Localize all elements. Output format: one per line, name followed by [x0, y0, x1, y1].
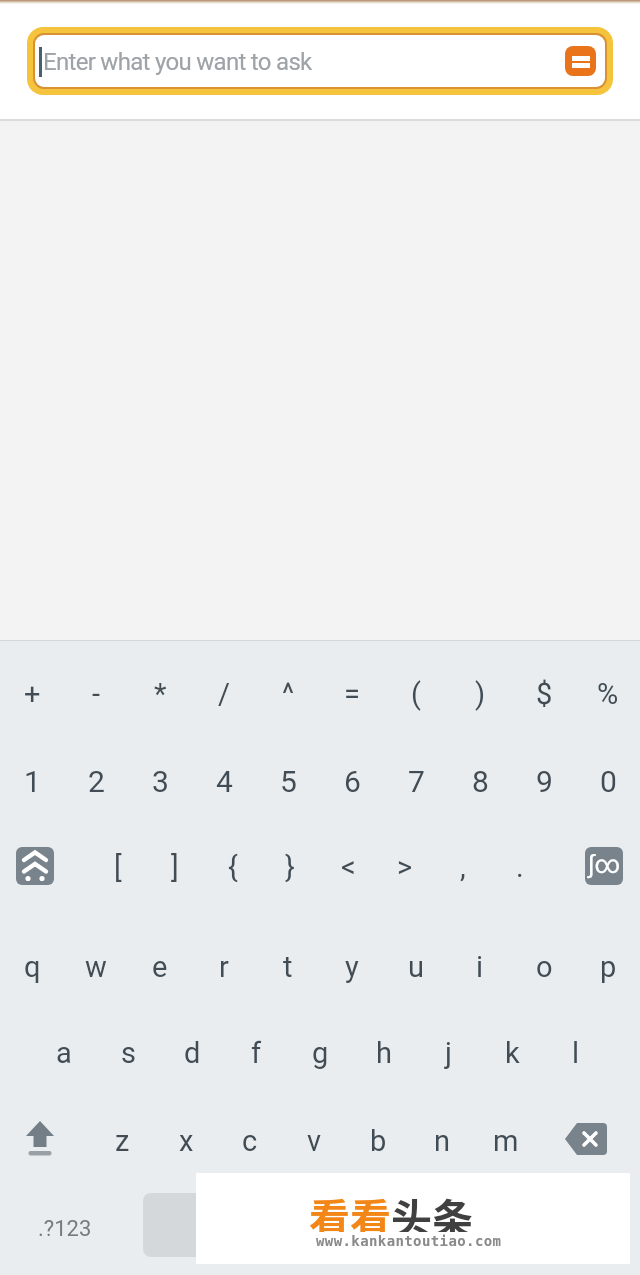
- button[interactable]: =: [322, 652, 382, 736]
- button[interactable]: 3: [130, 739, 190, 823]
- staticText: [: [114, 850, 122, 884]
- button[interactable]: k: [482, 1011, 542, 1095]
- staticText: 8: [472, 764, 489, 799]
- button[interactable]: b: [348, 1099, 408, 1183]
- button[interactable]: q: [2, 925, 62, 1009]
- staticText: u: [408, 950, 424, 984]
- button[interactable]: ^: [258, 652, 318, 736]
- button[interactable]: 6: [322, 739, 382, 823]
- staticText: 0: [600, 764, 617, 799]
- button[interactable]: v: [284, 1099, 344, 1183]
- staticText: $: [536, 677, 553, 711]
- button[interactable]: t: [258, 925, 318, 1009]
- staticText: .: [516, 850, 524, 884]
- staticText: a: [56, 1036, 72, 1070]
- button[interactable]: 4: [194, 739, 254, 823]
- button[interactable]: r: [194, 925, 254, 1009]
- button[interactable]: [565, 46, 596, 76]
- staticText: ∫∞: [588, 850, 621, 879]
- button[interactable]: 8: [450, 739, 510, 823]
- staticText: -: [92, 677, 101, 711]
- button[interactable]: c: [220, 1099, 280, 1183]
- staticText: 9: [536, 764, 553, 799]
- button[interactable]: /: [194, 652, 254, 736]
- staticText: ,: [460, 850, 466, 884]
- button[interactable]: p: [578, 925, 638, 1009]
- button[interactable]: y: [322, 925, 382, 1009]
- button[interactable]: <: [318, 825, 378, 909]
- button[interactable]: [557, 1096, 617, 1180]
- button[interactable]: -: [66, 652, 126, 736]
- staticText: ): [475, 677, 486, 711]
- button[interactable]: ]: [145, 825, 205, 909]
- button[interactable]: +: [2, 652, 62, 736]
- staticText: n: [434, 1124, 451, 1158]
- staticText: z: [115, 1124, 130, 1158]
- button[interactable]: }: [260, 825, 320, 909]
- staticText: t: [283, 950, 293, 984]
- button[interactable]: ∫∞: [585, 847, 623, 885]
- staticText: j: [445, 1036, 452, 1070]
- button[interactable]: f: [226, 1011, 286, 1095]
- button[interactable]: e: [130, 925, 190, 1009]
- button[interactable]: g: [290, 1011, 350, 1095]
- staticText: Enter what you want to ask: [43, 48, 312, 76]
- button[interactable]: l: [546, 1011, 606, 1095]
- button[interactable]: u: [386, 925, 446, 1009]
- staticText: *: [154, 677, 167, 711]
- button[interactable]: x: [156, 1099, 216, 1183]
- staticText: 7: [408, 764, 425, 799]
- staticText: www.kankantoutiao.com: [316, 1233, 502, 1249]
- staticText: q: [24, 950, 41, 984]
- button[interactable]: 2: [66, 739, 126, 823]
- staticText: %: [597, 677, 619, 711]
- button[interactable]: 1: [2, 739, 62, 823]
- button[interactable]: d: [162, 1011, 222, 1095]
- staticText: v: [307, 1124, 322, 1158]
- staticText: f: [251, 1036, 262, 1070]
- staticText: 1: [24, 764, 41, 799]
- button[interactable]: $: [514, 652, 574, 736]
- button[interactable]: [16, 847, 54, 885]
- staticText: d: [184, 1036, 201, 1070]
- button[interactable]: [: [88, 825, 148, 909]
- button[interactable]: %: [578, 652, 638, 736]
- button[interactable]: z: [92, 1099, 152, 1183]
- button[interactable]: [143, 1193, 497, 1257]
- button[interactable]: *: [130, 652, 190, 736]
- button[interactable]: n: [412, 1099, 472, 1183]
- staticText: <: [341, 850, 356, 884]
- button[interactable]: i: [450, 925, 510, 1009]
- staticText: m: [493, 1124, 519, 1158]
- button[interactable]: o: [514, 925, 574, 1009]
- button[interactable]: >: [375, 825, 435, 909]
- staticText: w: [85, 950, 107, 984]
- staticText: {: [228, 850, 238, 884]
- staticText: (: [411, 677, 421, 711]
- button[interactable]: ,: [433, 825, 493, 909]
- button[interactable]: (: [386, 652, 446, 736]
- button[interactable]: 7: [386, 739, 446, 823]
- button[interactable]: 0: [578, 739, 638, 823]
- staticText: 6: [344, 764, 361, 799]
- button[interactable]: m: [476, 1099, 536, 1183]
- staticText: .?123: [38, 1216, 92, 1242]
- staticText: ^: [282, 677, 295, 711]
- button[interactable]: .?123: [25, 1189, 105, 1269]
- button[interactable]: 5: [258, 739, 318, 823]
- button[interactable]: [7, 1096, 67, 1180]
- button[interactable]: ): [450, 652, 510, 736]
- button[interactable]: .: [490, 825, 550, 909]
- staticText: }: [285, 850, 295, 884]
- button[interactable]: j: [418, 1011, 478, 1095]
- staticText: +: [24, 677, 41, 711]
- button[interactable]: a: [34, 1011, 94, 1095]
- button[interactable]: Enter what you want to ask: [27, 27, 613, 95]
- button[interactable]: h: [354, 1011, 414, 1095]
- button[interactable]: {: [203, 825, 263, 909]
- staticText: 2: [88, 764, 105, 799]
- staticText: i: [476, 950, 484, 984]
- button[interactable]: s: [98, 1011, 158, 1095]
- button[interactable]: w: [66, 925, 126, 1009]
- button[interactable]: 9: [514, 739, 574, 823]
